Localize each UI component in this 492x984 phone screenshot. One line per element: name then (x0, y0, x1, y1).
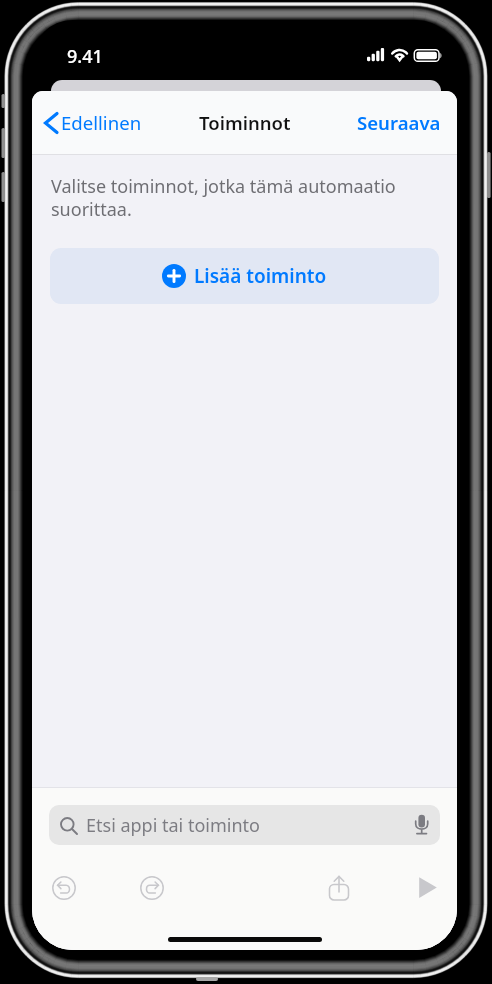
button[interactable]: Undo (42, 866, 86, 910)
button[interactable]: Etsi appi tai toiminto (49, 805, 440, 845)
staticText: 9.41 (67, 44, 103, 69)
staticText: Lisää toiminto (194, 263, 327, 289)
button[interactable]: Edellinen (40, 104, 146, 141)
button[interactable]: Seuraava (351, 104, 447, 141)
staticText: Valitse toiminnot, jotka tämä automaatio… (51, 174, 441, 221)
staticText: Etsi appi tai toiminto (86, 813, 260, 838)
staticText: Toiminnot (199, 110, 291, 135)
button[interactable]: Share (317, 866, 361, 910)
staticText: Edellinen (61, 110, 142, 135)
button[interactable]: Redo (130, 866, 174, 910)
button[interactable]: Run (406, 866, 450, 910)
staticText: Seuraava (357, 110, 441, 135)
button[interactable]: Lisää toiminto (50, 248, 439, 304)
